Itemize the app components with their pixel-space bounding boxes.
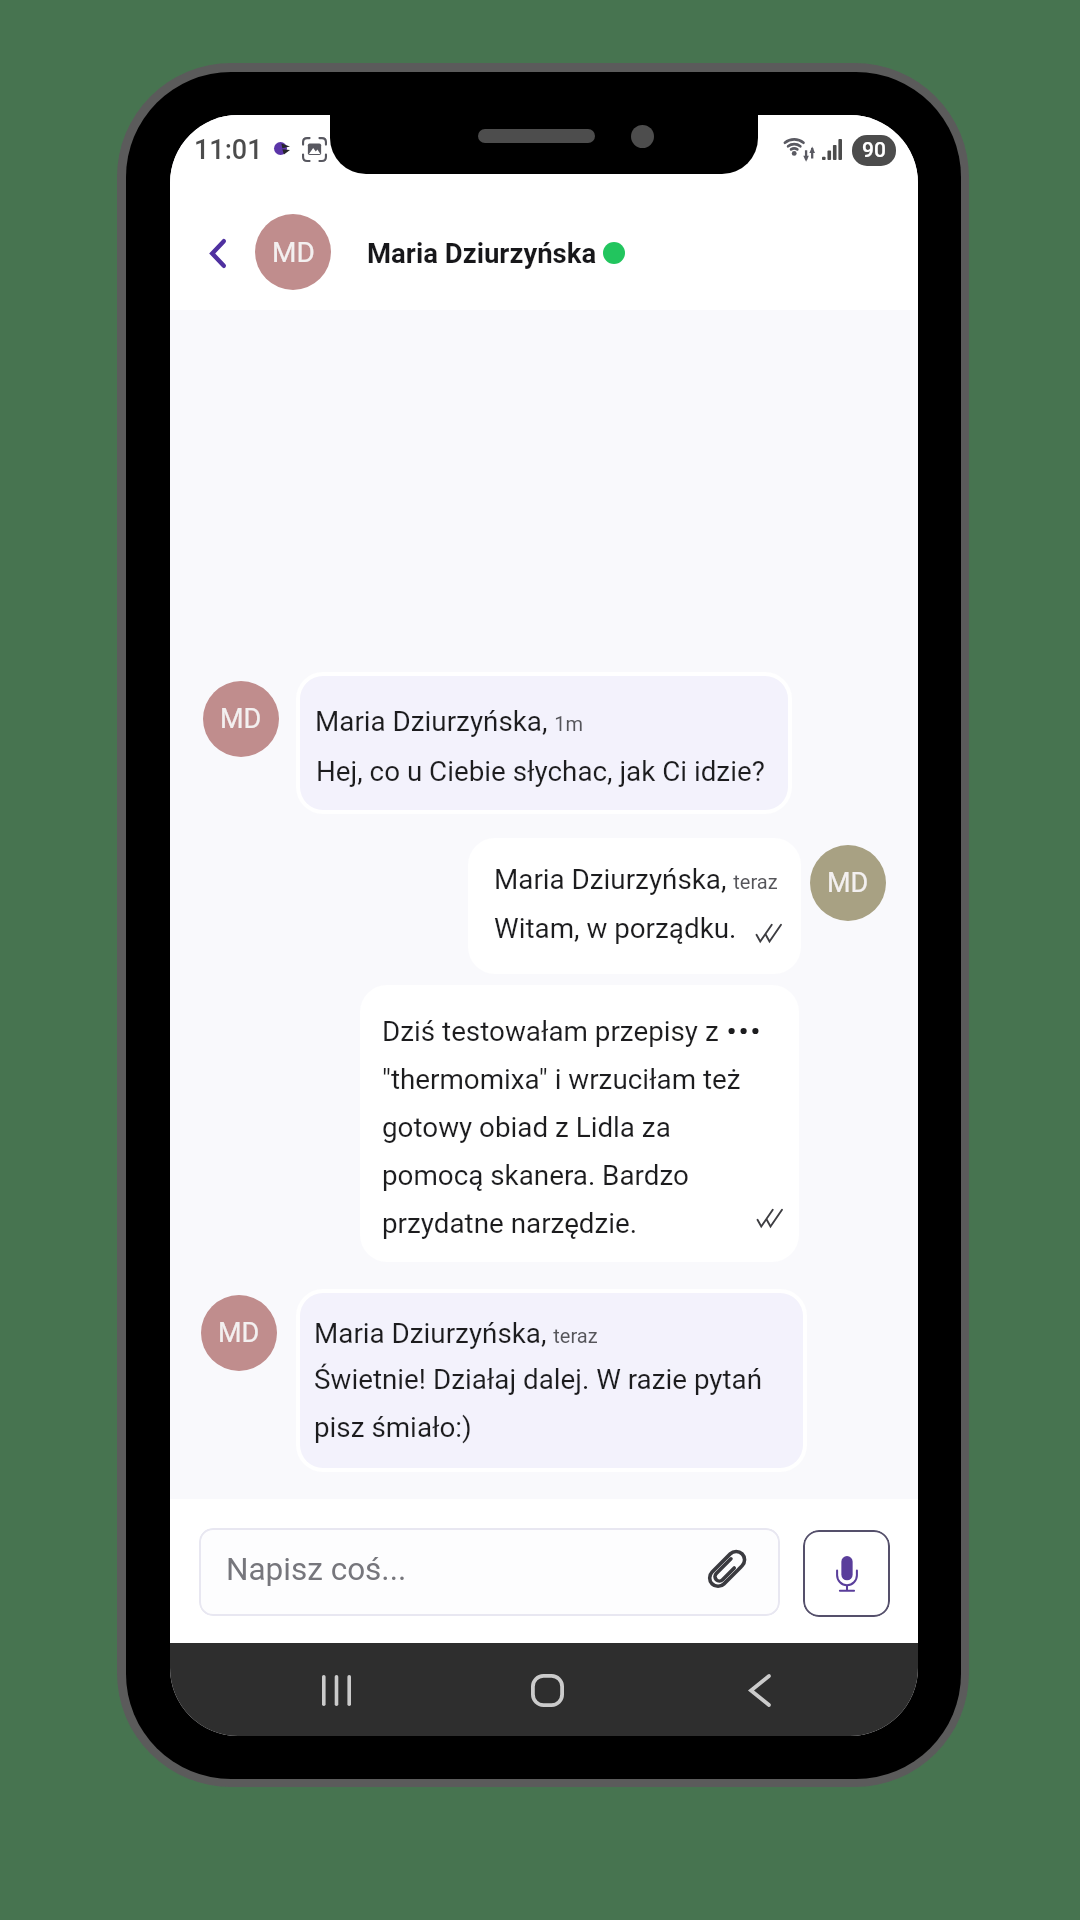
button[interactable]: Home: [492, 1652, 602, 1728]
staticText: Maria Dziurzyńska, 1m: [315, 705, 584, 738]
staticText: MD: [218, 1317, 260, 1349]
button[interactable]: Maria Dziurzyńska, 1m: [300, 676, 788, 810]
button[interactable]: Napisz coś...: [199, 1528, 780, 1616]
button[interactable]: Back: [705, 1652, 815, 1728]
staticText: Napisz coś...: [226, 1551, 407, 1588]
button[interactable]: Recent apps: [281, 1652, 391, 1728]
staticText: Maria Dziurzyńska, teraz: [494, 863, 778, 896]
button[interactable]: Maria Dziurzyńska, teraz: [472, 842, 797, 970]
button[interactable]: Record voice message: [803, 1530, 890, 1617]
staticText: Dziś testowałam przepisy z "thermomixa" …: [382, 1015, 741, 1239]
staticText: Hej, co u Ciebie słychac, jak Ci idzie?: [316, 755, 765, 788]
button[interactable]: Attach file: [703, 1551, 745, 1593]
staticText: MD: [220, 703, 262, 735]
staticText: MD: [827, 867, 869, 899]
button[interactable]: Dziś testowałam przepisy z "thermomixa" …: [364, 989, 795, 1258]
staticText: MD: [272, 236, 315, 269]
staticText: Maria Dziurzyńska: [367, 237, 597, 269]
button[interactable]: Back: [196, 223, 240, 283]
staticText: Świetnie! Działaj dalej. W razie pytań p…: [314, 1363, 763, 1444]
button[interactable]: Maria Dziurzyńska, teraz: [300, 1293, 803, 1468]
staticText: 11:01: [194, 134, 263, 166]
staticText: 90: [862, 138, 886, 163]
staticText: Witam, w porządku.: [494, 912, 737, 945]
staticText: Maria Dziurzyńska, teraz: [314, 1317, 598, 1350]
